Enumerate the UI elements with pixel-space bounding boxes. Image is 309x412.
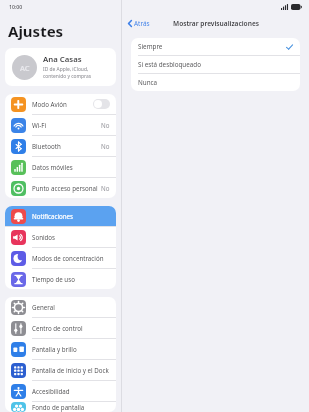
staticText: Ana Casas [43,54,82,65]
staticText: Datos móviles [32,163,110,171]
button[interactable]: Centro de control [5,318,116,338]
button[interactable]: Modos de concentración [5,248,116,268]
staticText: Fondo de pantalla [32,403,110,411]
staticText: 10:00 [9,3,23,10]
button[interactable]: Modo Avión [5,94,116,114]
button[interactable]: Pantalla y brillo [5,339,116,359]
staticText: Wi-Fi [32,121,101,129]
staticText: Modos de concentración [32,254,110,262]
staticText: Tiempo de uso [32,275,110,283]
button[interactable]: Accesibilidad [5,381,116,401]
staticText: Accesibilidad [32,387,110,395]
button[interactable]: General [5,297,116,317]
staticText: Sonidos [32,233,110,241]
button[interactable]: Modo Avión [93,99,110,109]
button[interactable]: Fondo de pantalla [5,402,116,412]
button[interactable]: Sonidos [5,227,116,247]
staticText: Pantalla de inicio y el Dock [32,366,110,374]
staticText: No [101,142,110,150]
button[interactable]: Pantalla de inicio y el Dock [5,360,116,380]
staticText: Siempre [138,42,286,51]
button[interactable]: AC [5,48,116,86]
button[interactable]: Si está desbloqueado [131,56,300,73]
staticText: Modo Avión [32,100,93,108]
staticText: Si está desbloqueado [138,60,293,69]
staticText: Punto acceso personal [32,184,101,192]
staticText: General [32,303,110,311]
staticText: Bluetooth [32,142,101,150]
staticText: Centro de control [32,324,110,332]
staticText: No [101,184,110,192]
button[interactable]: Datos móviles [5,157,116,177]
button[interactable]: Atrás [122,16,154,31]
staticText: contenido y compras [43,73,92,80]
staticText: ID de Apple, iCloud, [43,66,89,73]
button[interactable]: Siempre [131,38,300,55]
button[interactable]: Wi-Fi [5,115,116,135]
button[interactable]: Nunca [131,74,300,91]
staticText: Pantalla y brillo [32,345,110,353]
staticText: Nunca [138,78,293,87]
button[interactable]: Notificaciones [5,206,116,226]
staticText: No [101,121,110,129]
staticText: Atrás [134,19,150,28]
staticText: Ajustes [8,21,64,41]
button[interactable]: Punto acceso personal [5,178,116,198]
button[interactable]: Bluetooth [5,136,116,156]
staticText: Notificaciones [32,212,110,220]
button[interactable]: Tiempo de uso [5,269,116,289]
staticText: AC [20,63,30,73]
staticText: Mostrar previsualizaciones [173,19,259,28]
